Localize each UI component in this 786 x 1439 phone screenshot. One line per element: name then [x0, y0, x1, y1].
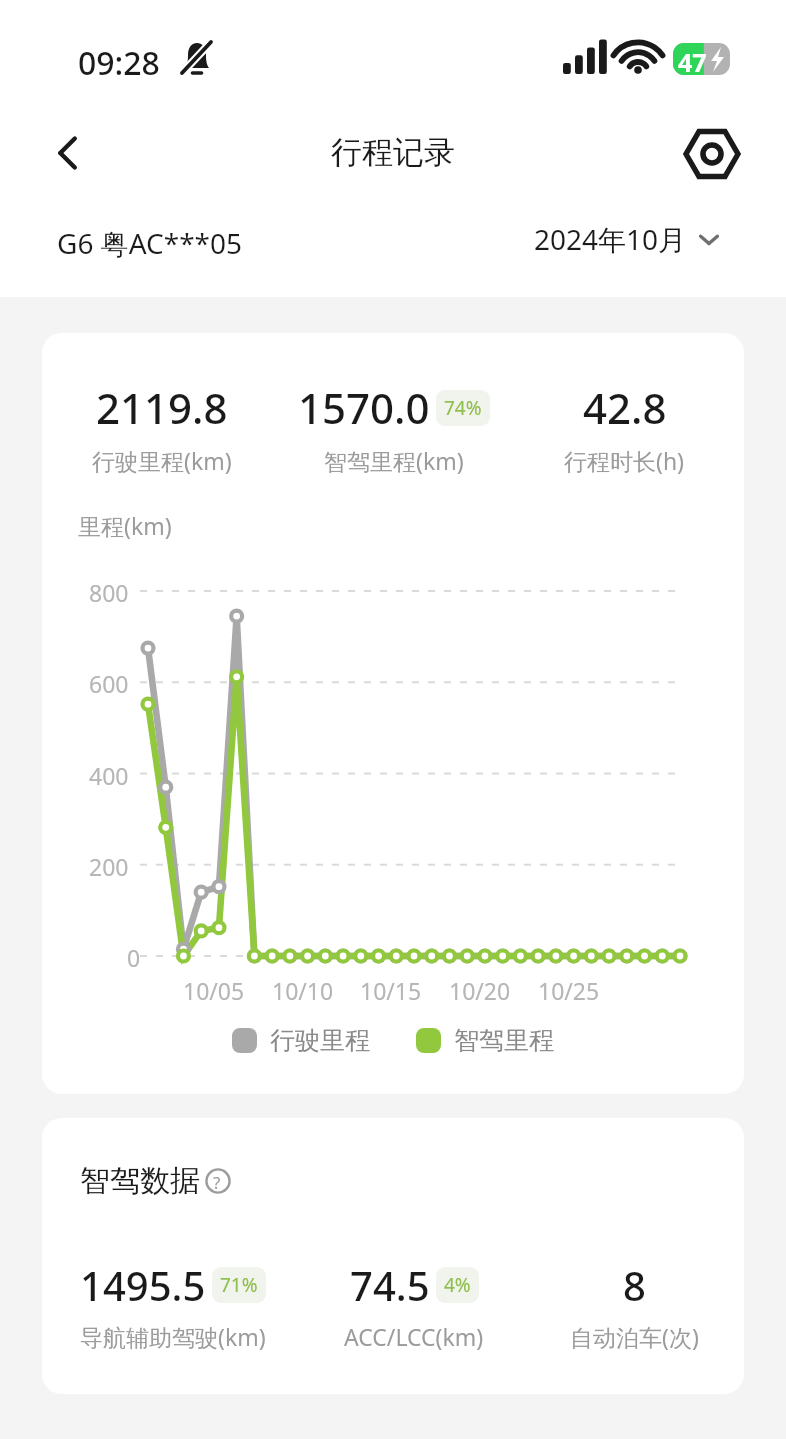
staticText: 0: [127, 942, 141, 973]
staticText: 行程记录: [0, 133, 786, 172]
button[interactable]: Help: [205, 1168, 231, 1194]
staticText: 智驾数据: [80, 1162, 200, 1200]
button[interactable]: 行驶里程: [232, 1025, 370, 1056]
staticText: 1570.0: [298, 379, 430, 436]
staticText: 行驶里程: [270, 1025, 370, 1056]
button[interactable]: 1570.0: [278, 379, 509, 476]
staticText: G6 粤AC***05: [57, 224, 243, 262]
staticText: 74.5: [350, 1258, 430, 1312]
staticText: 600: [89, 668, 129, 699]
staticText: 400: [89, 760, 129, 791]
button[interactable]: Back: [40, 124, 98, 182]
button[interactable]: 2024年10月: [534, 220, 723, 258]
staticText: 74%: [444, 395, 482, 421]
staticText: 智驾里程(km): [324, 445, 464, 476]
staticText: 10/05: [183, 975, 245, 1006]
staticText: 1495.5: [80, 1258, 206, 1312]
staticText: 行程时长(h): [564, 445, 685, 476]
button[interactable]: 1495.5: [46, 1258, 299, 1352]
staticText: 智驾里程: [454, 1025, 554, 1056]
staticText: 800: [89, 577, 129, 608]
staticText: ACC/LCC(km): [344, 1321, 484, 1352]
staticText: 自动泊车(次): [570, 1321, 699, 1352]
staticText: 4%: [444, 1272, 471, 1298]
staticText: 2119.8: [96, 379, 228, 436]
staticText: 导航辅助驾驶(km): [80, 1321, 266, 1352]
button[interactable]: 智驾数据: [42, 1118, 744, 1394]
button[interactable]: 74.5: [299, 1258, 529, 1352]
button[interactable]: 42.8: [509, 379, 740, 476]
button[interactable]: 2119.8: [42, 333, 744, 1094]
staticText: 里程(km): [78, 510, 172, 541]
staticText: 200: [89, 851, 129, 882]
button[interactable]: Settings: [682, 124, 742, 184]
staticText: 71%: [220, 1272, 258, 1298]
staticText: 2024年10月: [534, 220, 687, 258]
button[interactable]: 2119.8: [46, 379, 278, 476]
staticText: 47: [678, 45, 707, 79]
staticText: 09:28: [78, 41, 160, 85]
staticText: 10/20: [449, 975, 511, 1006]
staticText: 8: [623, 1258, 646, 1312]
staticText: 10/10: [272, 975, 334, 1006]
staticText: ?: [213, 1171, 221, 1194]
staticText: 42.8: [583, 379, 667, 436]
button[interactable]: 8: [529, 1258, 740, 1352]
staticText: 10/25: [538, 975, 600, 1006]
staticText: 10/15: [360, 975, 422, 1006]
button[interactable]: 智驾里程: [416, 1025, 554, 1056]
staticText: 行驶里程(km): [92, 445, 232, 476]
